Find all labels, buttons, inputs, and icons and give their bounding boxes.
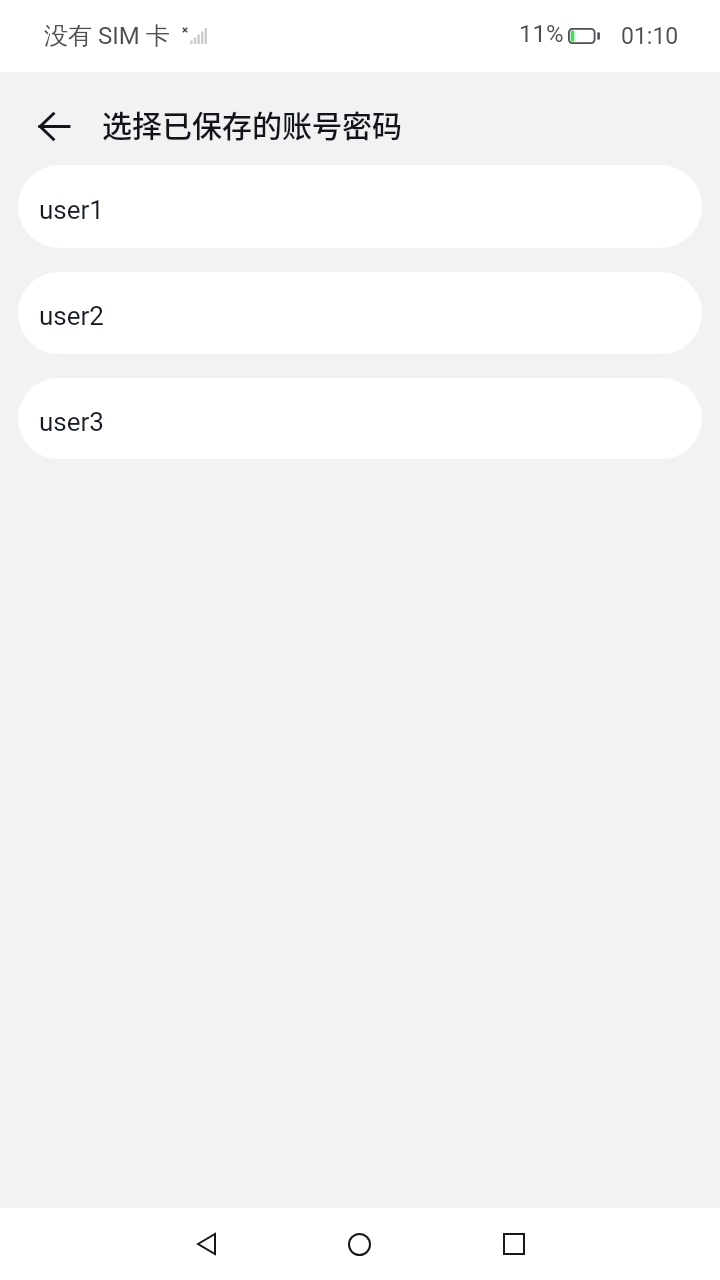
staticText: 没有 SIM 卡 (44, 21, 170, 51)
button[interactable]: Recents (467, 1208, 560, 1280)
staticText: user3 (39, 407, 104, 437)
staticText: user1 (39, 195, 104, 225)
staticText: 01:10 (621, 23, 679, 50)
staticText: 11% (519, 20, 564, 48)
button[interactable]: Back (15, 92, 93, 160)
button[interactable]: user3 (18, 378, 702, 459)
staticText: user2 (39, 301, 104, 331)
button[interactable]: user1 (18, 165, 702, 248)
staticText: 选择已保存的账号密码 (102, 102, 402, 145)
button[interactable]: Home (313, 1208, 406, 1280)
button[interactable]: user2 (18, 272, 702, 354)
button[interactable]: Back (160, 1208, 253, 1280)
